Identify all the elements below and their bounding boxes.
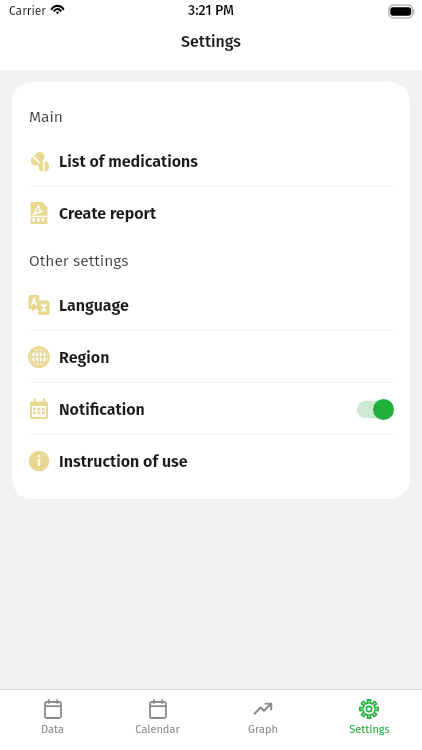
staticText: Region bbox=[59, 348, 110, 367]
button[interactable]: Create report bbox=[12, 187, 410, 239]
staticText: Notification bbox=[59, 400, 145, 419]
staticText: Carrier bbox=[9, 4, 46, 18]
other: Settings bbox=[359, 699, 379, 719]
button[interactable]: Graph bbox=[210, 699, 316, 736]
button[interactable]: Language bbox=[12, 279, 410, 331]
other: Data bbox=[43, 699, 63, 719]
button[interactable]: Notification toggle bbox=[357, 399, 394, 420]
button[interactable]: Region bbox=[12, 331, 410, 383]
staticText: Instruction of use bbox=[59, 452, 188, 471]
button[interactable]: Settings bbox=[316, 699, 422, 736]
button[interactable]: List of medications bbox=[12, 135, 410, 187]
button[interactable]: Notification bbox=[12, 383, 410, 435]
staticText: Main bbox=[29, 108, 63, 127]
staticText: 3:21 PM bbox=[188, 2, 234, 19]
staticText: Graph bbox=[248, 723, 278, 736]
button[interactable]: Instruction of use bbox=[12, 435, 410, 487]
staticText: Calendar bbox=[135, 723, 180, 736]
staticText: Language bbox=[59, 296, 129, 315]
button[interactable]: Calendar bbox=[105, 699, 210, 736]
staticText: Create report bbox=[59, 204, 157, 223]
staticText: Settings bbox=[349, 723, 390, 736]
other: Graph bbox=[253, 699, 273, 719]
other: Calendar bbox=[148, 699, 168, 719]
staticText: Other settings bbox=[29, 252, 129, 271]
button[interactable]: Data bbox=[0, 699, 105, 736]
staticText: List of medications bbox=[59, 152, 198, 171]
staticText: Data bbox=[41, 723, 64, 736]
staticText: Settings bbox=[181, 32, 242, 51]
